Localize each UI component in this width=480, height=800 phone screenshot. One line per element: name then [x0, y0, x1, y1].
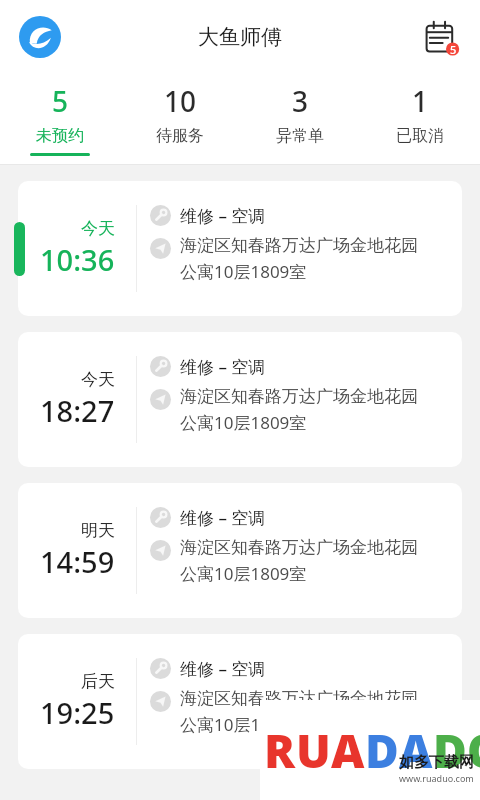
staticText: 维修 – 空调: [180, 355, 266, 378]
staticText: 海淀区知春路万达广场金地花园 公寓10层1809室: [180, 386, 418, 434]
staticText: D: [365, 719, 399, 782]
staticText: D: [433, 719, 467, 782]
button[interactable]: 今天: [18, 332, 462, 467]
button[interactable]: 明天: [18, 483, 462, 618]
staticText: 待服务: [156, 126, 204, 146]
button[interactable]: 3: [240, 74, 360, 164]
staticText: R: [264, 719, 296, 782]
staticText: 已取消: [396, 126, 444, 146]
staticText: 今天: [81, 218, 115, 239]
staticText: 海淀区知春路万达广场金地花园 公寓10层1809室: [180, 235, 418, 283]
button[interactable]: Orders: [418, 14, 464, 60]
staticText: www.ruaduo.com: [399, 772, 474, 784]
staticText: 异常单: [276, 126, 324, 146]
staticText: 18:27: [40, 391, 115, 430]
button[interactable]: 5: [0, 74, 120, 164]
staticText: 维修 – 空调: [180, 506, 266, 529]
button[interactable]: Profile: [17, 14, 63, 60]
staticText: 5: [52, 82, 69, 120]
staticText: 5: [450, 42, 457, 57]
staticText: 如多下载网: [399, 753, 474, 772]
staticText: A: [399, 719, 433, 782]
staticText: 维修 – 空调: [180, 204, 266, 227]
staticText: 10:36: [40, 240, 115, 279]
staticText: 14:59: [40, 542, 115, 581]
staticText: A: [331, 719, 365, 782]
staticText: 后天: [81, 671, 115, 692]
staticText: 海淀区知春路万达广场金地花园 公寓10层1809室: [180, 688, 418, 736]
button[interactable]: 10: [120, 74, 240, 164]
staticText: 1: [412, 82, 429, 120]
staticText: U: [296, 719, 331, 782]
staticText: 3: [292, 82, 309, 120]
staticText: 明天: [81, 520, 115, 541]
staticText: 未预约: [36, 126, 84, 146]
staticText: 维修 – 空调: [180, 657, 266, 680]
button[interactable]: 后天: [18, 634, 462, 769]
staticText: 今天: [81, 369, 115, 390]
staticText: 海淀区知春路万达广场金地花园 公寓10层1809室: [180, 537, 418, 585]
button[interactable]: 今天: [18, 181, 462, 316]
button[interactable]: 1: [360, 74, 480, 164]
staticText: O: [467, 719, 480, 782]
staticText: 19:25: [40, 693, 115, 732]
staticText: 10: [164, 82, 197, 120]
staticText: 大鱼师傅: [198, 24, 282, 50]
